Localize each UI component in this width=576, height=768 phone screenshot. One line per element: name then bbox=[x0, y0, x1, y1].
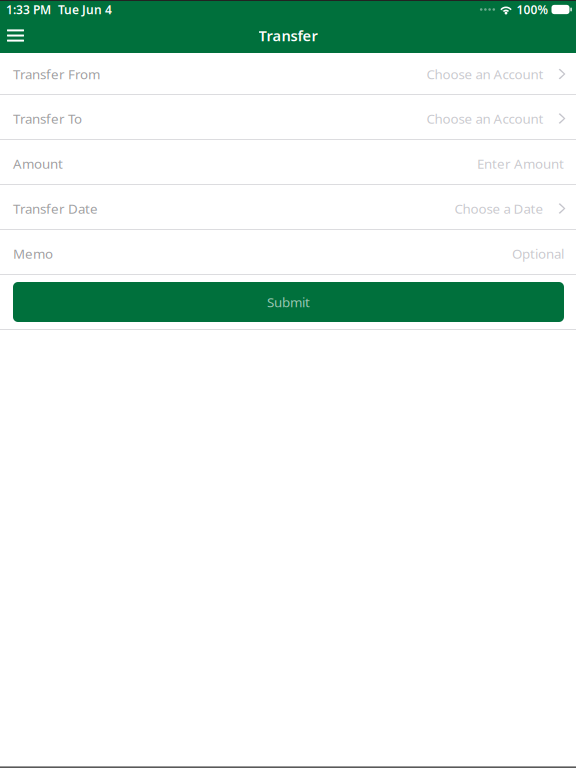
staticText: Transfer From bbox=[13, 65, 100, 83]
button[interactable]: Menu bbox=[0, 18, 36, 52]
staticText: Transfer bbox=[258, 26, 317, 45]
staticText: Transfer To bbox=[13, 110, 82, 127]
button[interactable]: Amount bbox=[0, 140, 576, 184]
button[interactable]: Transfer Date bbox=[0, 185, 576, 229]
button[interactable]: Transfer From bbox=[0, 53, 576, 94]
staticText: Choose an Account bbox=[426, 65, 543, 83]
staticText: Submit bbox=[267, 293, 310, 311]
staticText: Choose a Date bbox=[454, 200, 543, 217]
staticText: 1:33 PM bbox=[6, 1, 51, 17]
staticText: Tue Jun 4 bbox=[58, 1, 112, 17]
staticText: Memo bbox=[13, 245, 53, 262]
staticText: 100% bbox=[516, 1, 548, 17]
staticText: Amount bbox=[13, 155, 63, 172]
staticText: Optional bbox=[512, 245, 564, 262]
button[interactable]: Transfer To bbox=[0, 95, 576, 139]
button[interactable]: Memo bbox=[0, 230, 576, 274]
staticText: Transfer Date bbox=[13, 200, 98, 217]
button[interactable]: Submit bbox=[13, 282, 564, 322]
staticText: Choose an Account bbox=[426, 110, 543, 127]
staticText: Enter Amount bbox=[477, 155, 564, 172]
